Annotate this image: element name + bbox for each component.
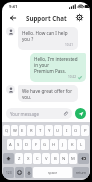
staticText: Q (5, 128, 9, 134)
staticText: Y (48, 128, 51, 134)
button[interactable]: G (41, 139, 49, 150)
staticText: X (27, 156, 30, 162)
staticText: D (25, 142, 29, 148)
button[interactable]: V (42, 153, 50, 164)
button[interactable]: space (33, 167, 72, 178)
staticText: W (13, 128, 17, 134)
button[interactable]: O (72, 125, 80, 136)
button[interactable]: We have great offer for you. (18, 85, 78, 102)
button[interactable]: S (15, 139, 22, 150)
staticText: S (17, 142, 20, 148)
staticText: We have great offer for you. (22, 88, 74, 99)
button[interactable]: Z (15, 153, 23, 164)
staticText: V (45, 156, 48, 162)
staticText: T (39, 128, 42, 134)
staticText: M (71, 156, 75, 162)
button[interactable]: C (33, 153, 41, 164)
staticText: E (21, 128, 24, 134)
staticText: C (36, 156, 39, 162)
button[interactable]: Voice input (25, 167, 32, 178)
button[interactable]: P (81, 125, 89, 136)
staticText: Hello, I'm interested in your Premium Pa… (34, 56, 82, 74)
staticText: G (43, 142, 47, 148)
button[interactable]: Send (75, 108, 86, 119)
button[interactable]: E (19, 125, 26, 136)
staticText: Z (18, 156, 21, 162)
button[interactable]: N (60, 153, 68, 164)
button[interactable]: Emoji (15, 167, 24, 178)
button[interactable]: Y (45, 125, 53, 136)
button[interactable]: Q (3, 125, 10, 136)
staticText: 9:41 (9, 4, 18, 10)
button[interactable]: F (32, 139, 40, 150)
button[interactable]: W (11, 125, 18, 136)
button[interactable]: J (59, 139, 67, 150)
staticText: P (84, 128, 87, 134)
button[interactable]: T (36, 125, 44, 136)
button[interactable]: 123 (3, 167, 14, 178)
staticText: O (74, 128, 78, 134)
button[interactable]: return (73, 167, 89, 178)
button[interactable]: D (23, 139, 31, 150)
button[interactable]: H (50, 139, 58, 150)
button[interactable]: Hello. How can I help you ? (18, 27, 78, 50)
staticText: H (52, 142, 56, 148)
button[interactable]: M (69, 153, 77, 164)
button[interactable]: B (51, 153, 59, 164)
button[interactable]: X (24, 153, 32, 164)
button[interactable]: K (68, 139, 76, 150)
button[interactable]: U (54, 125, 62, 136)
button[interactable]: L (77, 139, 85, 150)
staticText: F (35, 142, 38, 148)
button[interactable]: Your message (6, 108, 72, 119)
staticText: K (71, 142, 74, 148)
staticText: Hello. How can I help you ? (22, 30, 74, 42)
button[interactable]: A (7, 139, 14, 150)
staticText: J (62, 142, 64, 148)
staticText: I (66, 128, 68, 134)
staticText: B (54, 156, 57, 162)
button[interactable]: Back (7, 12, 18, 23)
staticText: Support Chat (26, 14, 67, 22)
staticText: return (76, 170, 87, 175)
button[interactable]: I (63, 125, 71, 136)
button[interactable]: Shift (3, 153, 14, 164)
staticText: Your message (10, 111, 40, 117)
staticText: 10:21 (65, 43, 74, 47)
staticText: N (62, 156, 66, 162)
staticText: space (48, 170, 58, 175)
button[interactable]: Backspace (78, 153, 89, 164)
button[interactable]: Hello, I'm interested in your Premium Pa… (30, 53, 86, 82)
button[interactable]: R (27, 125, 35, 136)
staticText: L (80, 142, 83, 148)
button[interactable]: Settings (74, 12, 85, 23)
staticText: R (30, 128, 33, 134)
staticText: U (56, 128, 60, 134)
staticText: 10:22 (68, 75, 77, 79)
staticText: A (9, 142, 12, 148)
staticText: 123 (6, 171, 12, 175)
